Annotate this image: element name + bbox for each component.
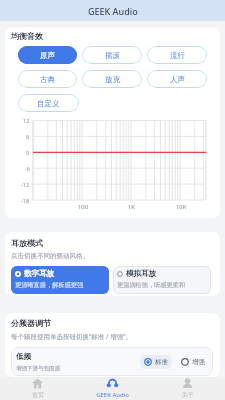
other: 关于	[182, 378, 193, 389]
button[interactable]: 原声	[18, 46, 77, 64]
staticText: 耳放模式	[11, 238, 43, 248]
staticText: 增强	[192, 358, 205, 366]
button[interactable]: 标准	[140, 355, 172, 369]
button[interactable]: 古典	[18, 70, 77, 88]
staticText: 古典	[40, 75, 55, 84]
staticText: 数字耳放	[24, 269, 54, 278]
staticText: 人声	[170, 75, 185, 84]
staticText: 放克	[105, 75, 120, 84]
staticText: 100	[78, 203, 88, 211]
staticText: 低频	[16, 352, 31, 361]
button[interactable]: GEEK Audio	[75, 377, 150, 400]
button[interactable]: 增强	[177, 355, 209, 369]
staticText: 摇滚	[105, 51, 120, 60]
staticText: 首页	[32, 391, 44, 399]
button[interactable]: 数字耳放	[11, 266, 109, 294]
button[interactable]: 摇滚	[82, 46, 142, 64]
staticText: 6	[26, 133, 30, 140]
button[interactable]: 人声	[147, 70, 207, 88]
staticText: -12	[21, 181, 30, 188]
staticText: 标准	[155, 358, 168, 366]
staticText: 均衡音效	[11, 31, 43, 41]
staticText: 12	[23, 117, 30, 124]
staticText: 模拟耳放	[126, 269, 156, 278]
other: 首页	[32, 378, 43, 389]
staticText: 增强下潜与包围感	[16, 365, 60, 372]
staticText: 分频器调节	[11, 318, 51, 328]
staticText: 自定义	[37, 99, 60, 108]
staticText: -6	[25, 165, 30, 172]
button[interactable]: 模拟耳放	[113, 266, 211, 294]
staticText: GEEK Audio	[88, 5, 138, 17]
staticText: 更清晰直接，解析感更强	[15, 281, 84, 289]
staticText: 更温润松弛，听感更柔和	[117, 281, 186, 289]
button[interactable]: 流行	[147, 46, 207, 64]
staticText: 点击切换不同的驱动风格。	[11, 252, 89, 260]
staticText: 每个频段使用单选按钮切换“标准 / 增强”。	[11, 332, 132, 341]
button[interactable]: 自定义	[18, 94, 79, 112]
button[interactable]: 首页	[0, 377, 75, 400]
staticText: 原声	[40, 51, 55, 60]
button[interactable]: 放克	[82, 70, 142, 88]
staticText: 关于	[182, 391, 194, 399]
other: GEEK Audio	[107, 378, 118, 389]
staticText: -18	[21, 197, 30, 204]
staticText: 流行	[170, 51, 185, 60]
staticText: 0	[26, 149, 30, 156]
staticText: GEEK Audio	[96, 391, 129, 399]
staticText: 1K	[128, 203, 135, 211]
staticText: 10K	[176, 203, 187, 211]
button[interactable]: 关于	[150, 377, 225, 400]
